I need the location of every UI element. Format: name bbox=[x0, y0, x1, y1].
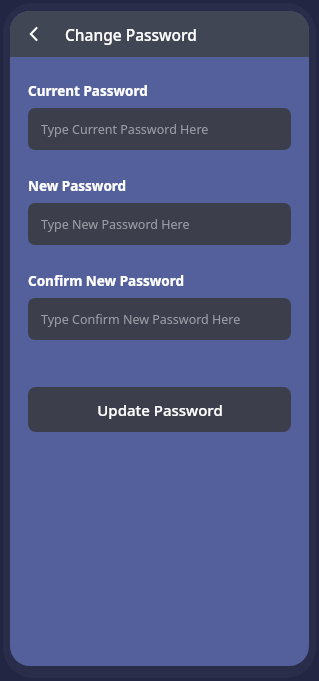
button[interactable]: Type New Password Here bbox=[28, 203, 291, 245]
staticText: Type Current Password Here bbox=[41, 121, 209, 138]
staticText: Update Password bbox=[97, 400, 223, 420]
button[interactable]: Update Password bbox=[28, 387, 291, 432]
button[interactable]: Back bbox=[18, 18, 50, 50]
staticText: New Password bbox=[28, 177, 127, 195]
staticText: Type New Password Here bbox=[41, 216, 190, 233]
staticText: Type Confirm New Password Here bbox=[41, 311, 241, 328]
staticText: Confirm New Password bbox=[28, 272, 184, 290]
button[interactable]: Type Confirm New Password Here bbox=[28, 298, 291, 340]
staticText: Change Password bbox=[65, 24, 197, 45]
button[interactable]: Type Current Password Here bbox=[28, 108, 291, 150]
staticText: Current Password bbox=[28, 82, 148, 100]
